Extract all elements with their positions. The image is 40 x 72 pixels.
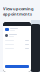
- staticText: appointments: [3, 11, 32, 17]
- staticText: View upcoming: [3, 6, 34, 11]
